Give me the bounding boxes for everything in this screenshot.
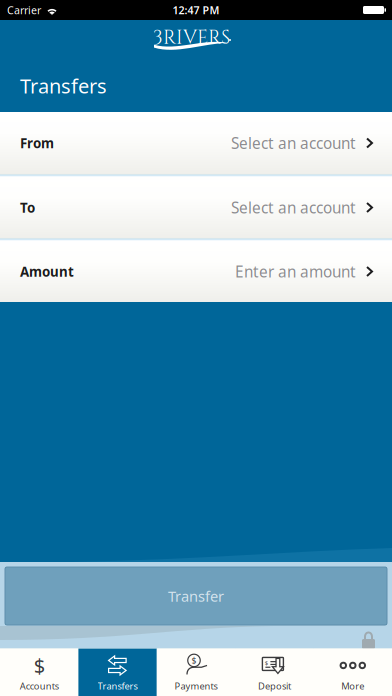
staticText: More <box>341 679 364 692</box>
staticText: Deposit <box>258 679 291 692</box>
staticText: 3RIVERS <box>153 25 230 51</box>
staticText: Enter an amount <box>235 261 356 282</box>
button[interactable]: Transfer <box>5 567 387 625</box>
staticText: From <box>20 134 54 152</box>
button[interactable]: Amount <box>0 241 392 305</box>
button[interactable]: $ <box>235 649 314 696</box>
button[interactable]: More <box>314 649 392 696</box>
button[interactable]: Transfers <box>78 649 157 696</box>
staticText: Accounts <box>20 679 59 692</box>
staticText: Payments <box>174 679 217 692</box>
staticText: Select an account <box>231 197 356 218</box>
button[interactable]: $ <box>0 649 78 696</box>
staticText: Transfers <box>20 72 107 99</box>
button[interactable]: $ <box>157 649 235 696</box>
staticText: $ <box>265 659 268 667</box>
staticText: $ <box>191 654 196 666</box>
staticText: 12:47 PM <box>172 3 219 17</box>
staticText: Transfer <box>168 586 224 606</box>
staticText: $ <box>34 652 45 679</box>
staticText: Transfers <box>98 679 138 692</box>
staticText: Select an account <box>231 133 356 153</box>
staticText: Amount <box>20 262 74 281</box>
button[interactable]: From <box>0 112 392 177</box>
staticText: Carrier <box>7 3 41 17</box>
staticText: To <box>20 198 35 217</box>
button[interactable]: To <box>0 177 392 241</box>
